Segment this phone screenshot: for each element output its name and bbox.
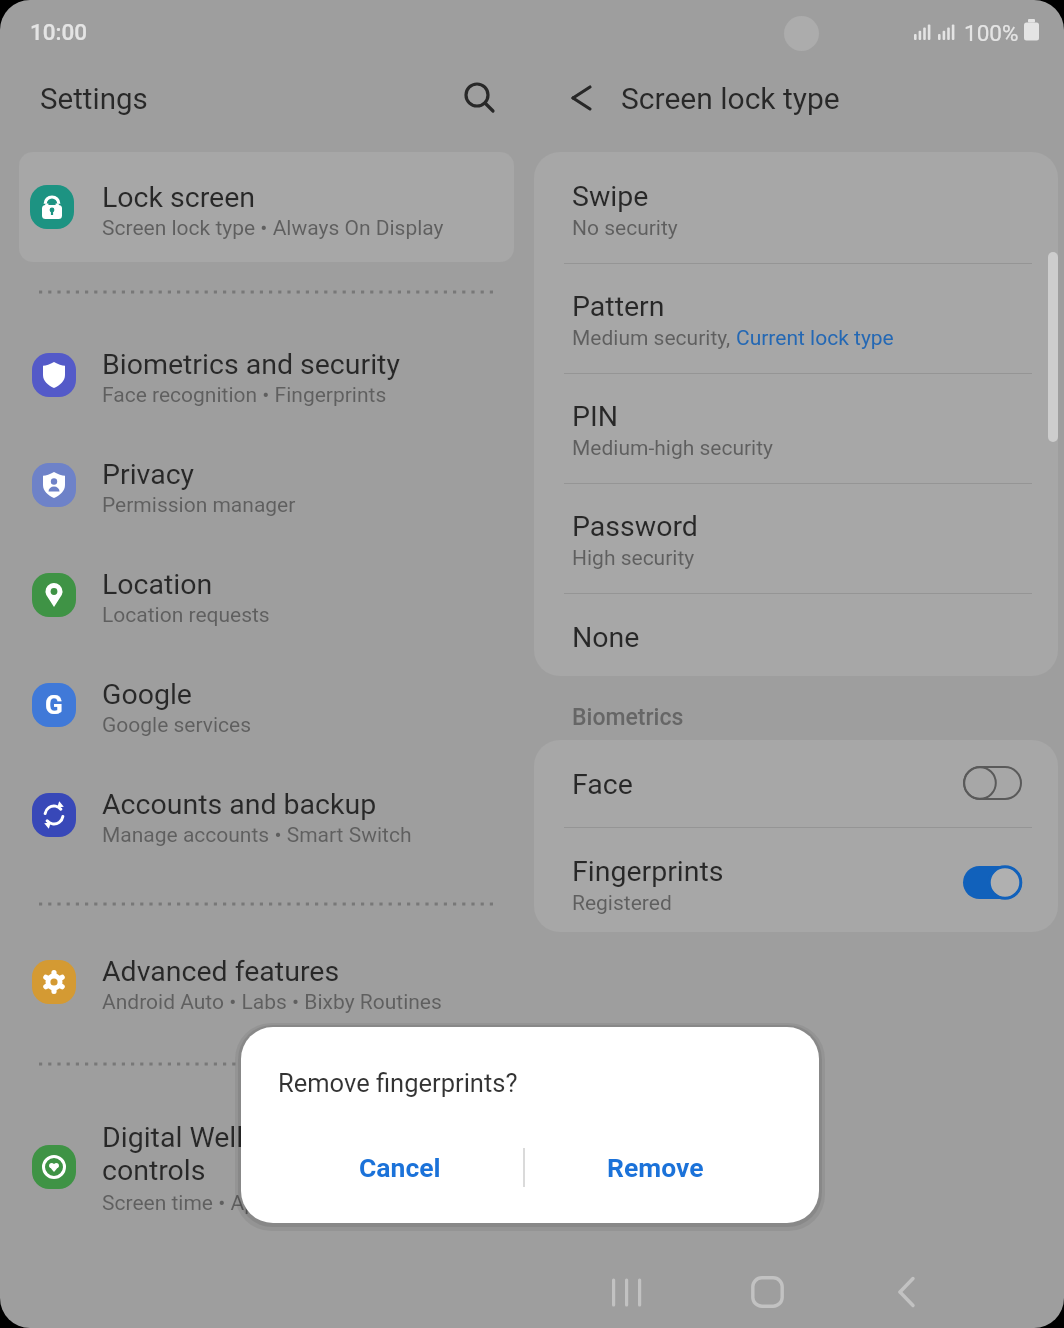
staticText: Google services (102, 713, 252, 738)
staticText: Fingerprints (572, 855, 724, 888)
staticText: Registered (572, 891, 672, 916)
staticText: Pattern (572, 290, 665, 323)
staticText: No security (572, 216, 678, 241)
staticText: Swipe (572, 180, 649, 213)
button[interactable] (460, 79, 498, 117)
staticText: Medium-high security (572, 436, 774, 461)
staticText: Lock screen (102, 181, 256, 214)
button[interactable] (534, 502, 1058, 606)
staticText: Current lock type (736, 326, 894, 351)
staticText: Advanced features (102, 955, 340, 988)
button[interactable] (534, 392, 1058, 496)
staticText: Biometrics (572, 704, 684, 731)
staticText: Biometrics and security (102, 348, 400, 381)
button[interactable] (534, 613, 1058, 717)
button[interactable] (18, 761, 514, 869)
button[interactable] (897, 1277, 919, 1307)
button[interactable] (18, 541, 514, 649)
staticText: Accounts and backup (102, 788, 377, 821)
button[interactable] (18, 321, 514, 429)
staticText: 100% (964, 20, 1019, 46)
staticText: Screen time • App timers (102, 1191, 333, 1216)
staticText: High security (572, 546, 695, 571)
staticText: Settings (40, 82, 148, 117)
button[interactable] (963, 866, 1023, 900)
staticText: Location requests (102, 603, 270, 628)
staticText: None (572, 621, 640, 654)
button[interactable]: Cancel (250, 1127, 550, 1207)
staticText: Cancel (359, 1152, 441, 1183)
staticText: Remove (607, 1152, 704, 1183)
staticText: Location (102, 568, 213, 601)
button[interactable] (18, 651, 514, 759)
staticText: Manage accounts • Smart Switch (102, 823, 412, 848)
button[interactable] (534, 282, 1058, 386)
button[interactable] (963, 766, 1023, 800)
staticText: PIN (572, 400, 619, 433)
staticText: Face recognition • Fingerprints (102, 383, 387, 408)
button[interactable] (566, 84, 596, 114)
button[interactable]: Remove (505, 1127, 805, 1207)
staticText: controls (102, 1154, 206, 1187)
button[interactable] (534, 172, 1058, 276)
staticText: Privacy (102, 458, 195, 491)
staticText: Screen lock type • Always On Display (102, 216, 444, 241)
staticText: Permission manager (102, 493, 296, 518)
staticText: Digital Wellbeing and (102, 1121, 368, 1154)
button[interactable] (751, 1276, 784, 1308)
button[interactable] (610, 1277, 644, 1308)
staticText: 10:00 (30, 19, 88, 45)
staticText: Android Auto • Labs • Bixby Routines (102, 990, 442, 1015)
staticText: Face (572, 768, 633, 801)
button[interactable] (534, 827, 1058, 932)
button[interactable] (19, 152, 514, 262)
button[interactable] (18, 431, 514, 539)
button[interactable] (534, 740, 1058, 827)
staticText: Google (102, 678, 192, 711)
staticText: Password (572, 510, 698, 543)
staticText: Remove fingerprints? (278, 1068, 518, 1098)
staticText: Screen lock type (621, 81, 840, 116)
button[interactable] (18, 928, 514, 1036)
staticText: Medium security, (572, 326, 736, 351)
staticText: G (45, 690, 63, 720)
